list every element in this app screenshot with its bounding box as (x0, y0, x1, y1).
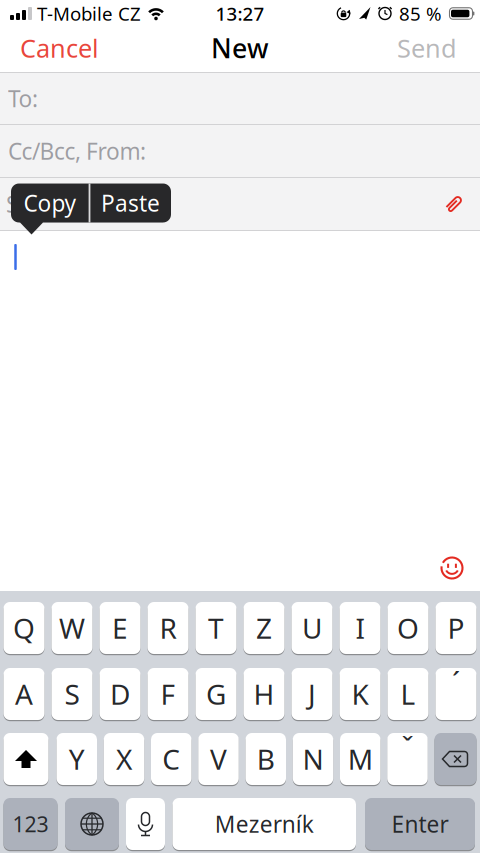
staticText: Z (256, 609, 272, 647)
button[interactable]: A (3, 667, 44, 721)
button[interactable]: F (147, 667, 188, 721)
button[interactable]: ˇ (387, 732, 428, 786)
button[interactable]: M (340, 732, 380, 786)
button[interactable]: To: (0, 73, 480, 124)
button[interactable]: 123 (3, 797, 57, 851)
button[interactable]: Copy (11, 183, 89, 222)
staticText: F (160, 675, 175, 713)
staticText: To: (8, 83, 38, 113)
button[interactable]: Y (56, 732, 97, 786)
button[interactable] (440, 556, 463, 579)
staticText: ˇ (401, 727, 413, 766)
button[interactable]: Send (397, 31, 457, 65)
staticText: G (206, 675, 226, 713)
button[interactable]: S (51, 667, 92, 721)
button[interactable]: U (291, 601, 332, 655)
staticText: Paste (101, 188, 160, 218)
staticText: X (116, 740, 132, 778)
button[interactable]: T (195, 601, 236, 655)
button[interactable]: Cancel (20, 31, 99, 65)
staticText: P (447, 609, 464, 647)
button[interactable]: H (243, 667, 284, 721)
button[interactable]: G (195, 667, 236, 721)
staticText: 85 % (399, 1, 442, 26)
staticText: I (355, 609, 364, 647)
staticText: B (257, 740, 275, 778)
staticText: V (210, 740, 227, 778)
staticText: C (162, 740, 180, 778)
button[interactable]: B (245, 732, 286, 786)
staticText: U (302, 609, 322, 647)
staticText: T-Mobile CZ (37, 1, 141, 26)
staticText: O (397, 609, 419, 647)
button[interactable]: Z (243, 601, 284, 655)
button[interactable]: P (435, 601, 476, 655)
button[interactable]: Paste (90, 183, 170, 222)
button[interactable]: I (339, 601, 380, 655)
button[interactable] (3, 732, 48, 786)
button[interactable]: E (99, 601, 140, 655)
staticText: H (253, 675, 274, 713)
staticText: 123 (12, 810, 48, 838)
staticText: A (15, 675, 33, 713)
button[interactable]: ´ (435, 667, 476, 721)
staticText: R (159, 609, 176, 647)
button[interactable]: X (104, 732, 144, 786)
button[interactable]: J (291, 667, 332, 721)
staticText: Mezerník (215, 809, 314, 839)
button[interactable]: Q (3, 601, 44, 655)
staticText: ´ (452, 662, 460, 701)
button[interactable]: N (293, 732, 333, 786)
button[interactable]: K (339, 667, 380, 721)
button[interactable]: Mezerník (172, 797, 356, 851)
staticText: 13:27 (215, 1, 264, 26)
button[interactable]: V (198, 732, 239, 786)
staticText: T (208, 609, 224, 647)
staticText: W (59, 609, 85, 647)
button[interactable]: C (151, 732, 191, 786)
staticText: L (400, 675, 415, 713)
button[interactable] (434, 732, 476, 786)
button[interactable]: L (387, 667, 428, 721)
button[interactable]: Cc/Bcc, From: (0, 125, 480, 177)
staticText: Subject (6, 189, 81, 219)
staticText: Copy (23, 188, 76, 218)
staticText: K (351, 675, 368, 713)
button[interactable]: Enter (365, 797, 475, 851)
button[interactable]: R (147, 601, 188, 655)
staticText: S (64, 675, 79, 713)
staticText: Cancel (20, 31, 99, 65)
staticText: New (211, 30, 269, 66)
staticText: M (348, 740, 373, 778)
button[interactable] (65, 797, 119, 851)
button[interactable]: Subject (0, 178, 480, 230)
button[interactable]: W (51, 601, 92, 655)
staticText: Y (69, 740, 85, 778)
staticText: Q (13, 609, 35, 647)
staticText: Enter (391, 809, 448, 839)
button[interactable]: O (387, 601, 428, 655)
staticText: E (112, 609, 128, 647)
button[interactable] (126, 797, 165, 851)
staticText: Send (397, 31, 457, 65)
button[interactable]: D (99, 667, 140, 721)
staticText: J (308, 675, 316, 713)
staticText: N (302, 740, 323, 778)
staticText: Cc/Bcc, From: (8, 136, 146, 166)
staticText: D (110, 675, 130, 713)
